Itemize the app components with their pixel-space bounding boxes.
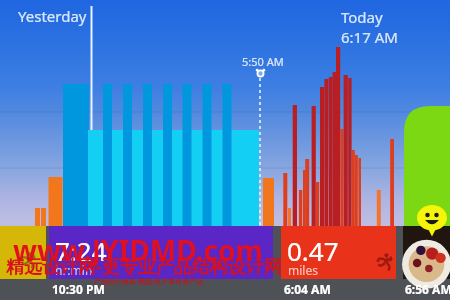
staticText: 7:24 — [55, 233, 107, 268]
button[interactable]: Previous activity — [0, 226, 46, 279]
button[interactable]: 0.47 — [281, 226, 396, 279]
staticText: hr:min — [55, 262, 93, 278]
staticText: Yesterday — [18, 6, 87, 26]
staticText: 10:30 PM — [52, 281, 105, 297]
staticText: 6:56 AM — [405, 281, 450, 297]
staticText: Today — [341, 7, 383, 27]
staticText: 产品设计网站·精选:电子零件类产品 — [94, 277, 203, 287]
staticText: www.JYIDMD.com — [13, 231, 263, 269]
staticText: 6:17 AM — [341, 27, 398, 47]
button[interactable]: 7:24 — [49, 226, 273, 279]
staticText: 6:04 AM — [284, 281, 331, 297]
staticText: 0.47 — [287, 233, 339, 268]
staticText: 精远设计网-更专业产品结构设计网 — [6, 254, 282, 279]
staticText: 5:50 AM — [242, 54, 284, 69]
button[interactable]: Meal photo — [403, 226, 450, 279]
staticText: miles — [288, 262, 318, 278]
